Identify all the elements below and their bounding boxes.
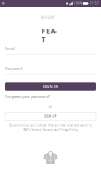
button[interactable]: Forgotten your password? [5, 94, 50, 99]
staticText: FEAT [42, 26, 59, 35]
staticText: By continuing you indicate that you have… [9, 124, 92, 132]
staticText: SIGN UP [44, 115, 57, 118]
staticText: Password [5, 66, 22, 71]
staticText: 11:57 [90, 2, 99, 5]
staticText: SIGN IN [43, 84, 58, 89]
staticText: Email [5, 46, 15, 51]
staticText: or [48, 104, 52, 109]
staticText: Forgotten your password? [5, 94, 50, 99]
button[interactable]: SIGN IN [5, 82, 96, 91]
button[interactable]: SIGN UP [5, 112, 96, 121]
staticText: 100% [74, 2, 82, 5]
staticText: FEAT [45, 15, 54, 20]
